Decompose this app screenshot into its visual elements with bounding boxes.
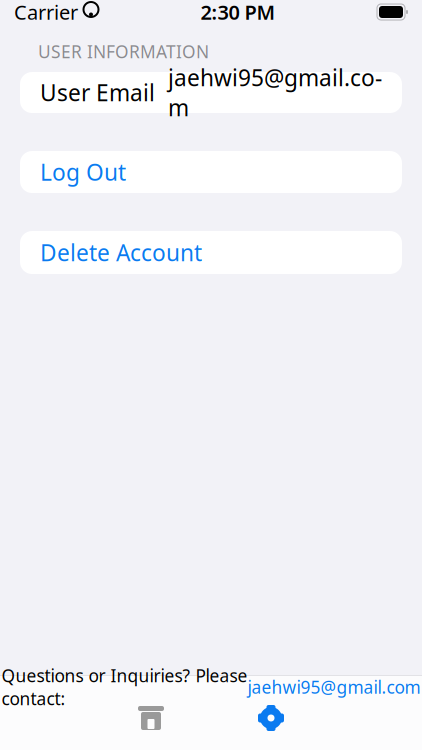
staticText: Log Out xyxy=(40,157,126,187)
staticText: Questions or Inquiries? Please contact: xyxy=(1,664,247,710)
staticText: Carrier xyxy=(14,0,78,25)
staticText: jaehwi95@gmail.com xyxy=(168,62,382,123)
button[interactable]: Log Out xyxy=(0,151,422,193)
button[interactable]: jaehwi95@gmail.com xyxy=(247,675,420,698)
staticText: jaehwi95@gmail.com xyxy=(247,675,420,698)
button[interactable]: Home xyxy=(91,698,211,738)
staticText: Delete Account xyxy=(40,237,202,268)
staticText: USER INFORMATION xyxy=(38,40,209,63)
staticText: User Email xyxy=(40,77,155,108)
staticText: 2:30 PM xyxy=(200,0,275,25)
button[interactable]: Delete Account xyxy=(0,231,422,274)
button[interactable]: Settings xyxy=(211,698,331,738)
